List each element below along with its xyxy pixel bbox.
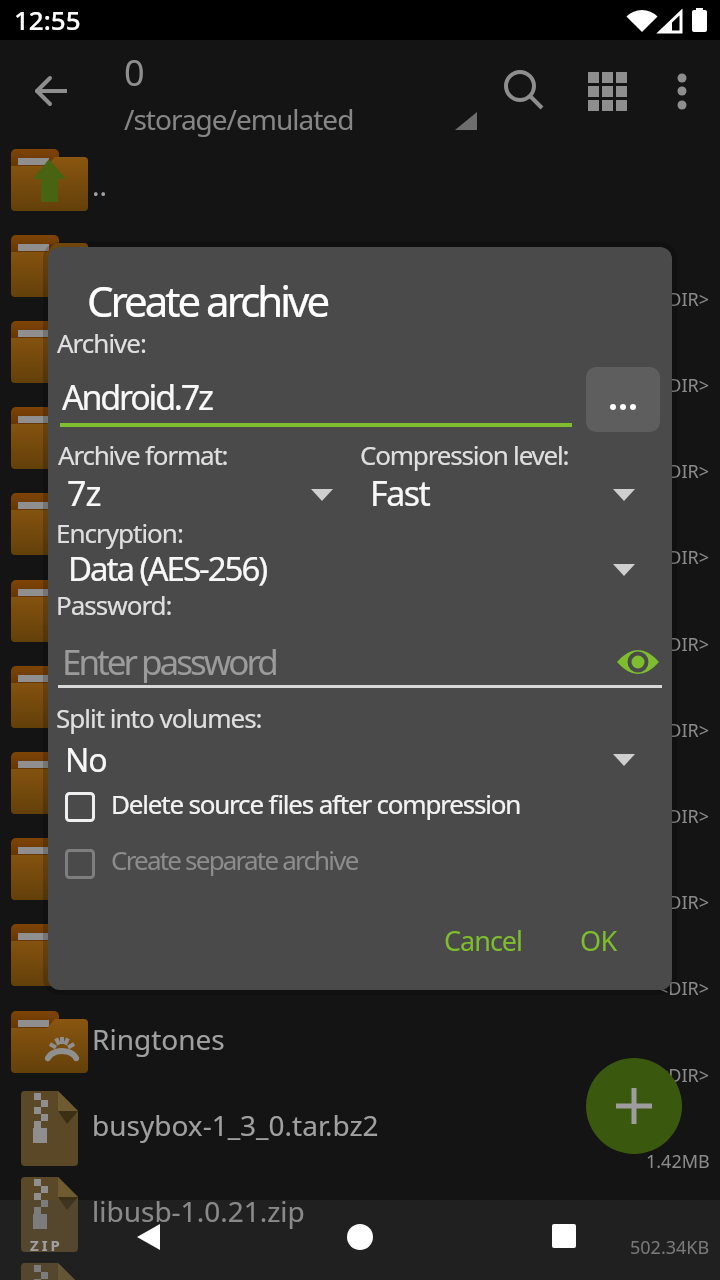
button[interactable] (496, 62, 548, 114)
button[interactable] (613, 639, 663, 685)
staticText: OK (580, 922, 617, 959)
staticText: .. (92, 166, 108, 204)
button[interactable] (658, 62, 706, 118)
staticText: 7z (67, 470, 101, 516)
staticText: Delete source files after compression (111, 786, 521, 821)
button[interactable] (0, 999, 720, 1085)
button[interactable] (0, 1171, 720, 1257)
button[interactable] (26, 66, 74, 114)
button[interactable] (0, 309, 720, 395)
staticText: <DIR> (658, 890, 710, 915)
staticText: Fast (370, 470, 430, 516)
button[interactable] (0, 568, 720, 654)
staticText: <DIR> (658, 976, 710, 1001)
staticText: <DIR> (658, 632, 710, 657)
staticText: 1.42MB (646, 1149, 710, 1174)
staticText: <DIR> (658, 1063, 710, 1088)
button[interactable]: OK (560, 907, 650, 967)
staticText: No (65, 738, 107, 782)
staticText: Enter password (62, 638, 276, 686)
staticText: 0 (124, 48, 145, 97)
button[interactable]: Cancel (422, 907, 542, 967)
button[interactable] (532, 1210, 596, 1274)
staticText: Data (AES-256) (68, 546, 267, 591)
staticText: Android.7z (62, 374, 212, 420)
button[interactable]: No (56, 734, 660, 780)
button[interactable] (0, 395, 720, 481)
staticText: /storage/emulated (124, 100, 354, 138)
button[interactable]: Data (AES-256) (56, 542, 660, 588)
button[interactable] (0, 740, 720, 826)
button[interactable] (582, 66, 634, 114)
button[interactable] (586, 1058, 682, 1154)
staticText: Create separate archive (111, 842, 358, 877)
button[interactable]: /storage/emulated (124, 100, 484, 140)
button[interactable]: Fast (360, 467, 660, 513)
button[interactable]: 7z (58, 467, 348, 513)
button[interactable] (120, 1210, 184, 1274)
button[interactable] (328, 1210, 392, 1274)
staticText: Split into volumes: (56, 700, 262, 735)
button[interactable] (0, 654, 720, 740)
staticText: Create archive (87, 272, 328, 329)
staticText: Archive: (57, 325, 146, 360)
staticText: Password: (56, 587, 172, 622)
button[interactable] (65, 792, 95, 822)
staticText: <DIR> (658, 459, 710, 484)
staticText: libusb-1.0.21.zip (92, 1192, 305, 1230)
staticText: Ringtones (92, 1020, 225, 1058)
button[interactable] (0, 912, 720, 998)
button[interactable] (0, 481, 720, 567)
staticText: <DIR> (658, 373, 710, 398)
staticText: Cancel (444, 922, 523, 959)
button[interactable] (0, 137, 720, 223)
button[interactable] (586, 367, 660, 432)
staticText: <DIR> (658, 804, 710, 829)
staticText: Compression level: (360, 437, 569, 472)
button[interactable] (65, 849, 95, 879)
button[interactable] (0, 826, 720, 912)
staticText: 502.34KB (630, 1235, 710, 1260)
staticText: Encryption: (56, 515, 183, 550)
button[interactable] (0, 1085, 720, 1171)
button[interactable] (0, 223, 720, 309)
staticText: <DIR> (658, 287, 710, 312)
staticText: <DIR> (658, 545, 710, 570)
staticText: <DIR> (658, 718, 710, 743)
staticText: 12:55 (14, 2, 81, 37)
staticText: busybox-1_3_0.tar.bz2 (92, 1106, 379, 1144)
staticText: Archive format: (58, 437, 228, 472)
staticText: ZIP (30, 1235, 63, 1255)
